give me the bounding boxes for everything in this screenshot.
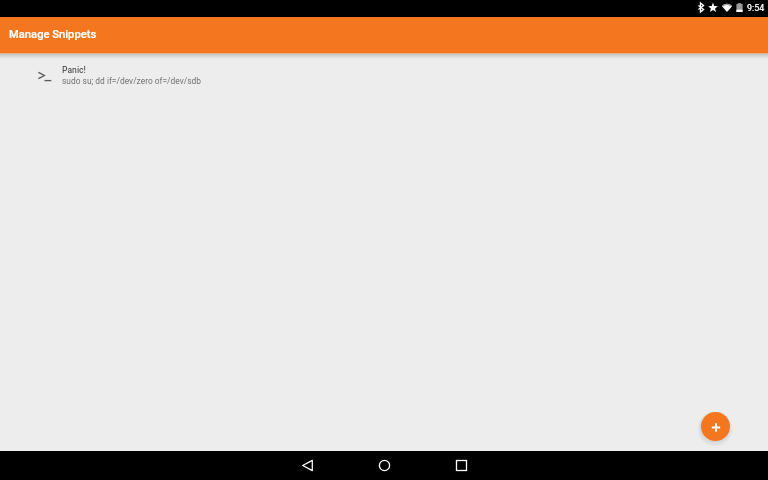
staticText: Panic! <box>62 65 86 75</box>
button[interactable]: Add snippet <box>701 412 730 441</box>
staticText: sudo su; dd if=/dev/zero of=/dev/sdb <box>62 76 201 86</box>
button[interactable]: Home <box>346 451 423 480</box>
button[interactable]: Recents <box>423 451 500 480</box>
staticText: 9:54 <box>747 3 765 13</box>
staticText: Manage Snippets <box>9 28 97 41</box>
button[interactable]: Back <box>269 451 346 480</box>
button[interactable]: Panic! <box>0 60 768 94</box>
